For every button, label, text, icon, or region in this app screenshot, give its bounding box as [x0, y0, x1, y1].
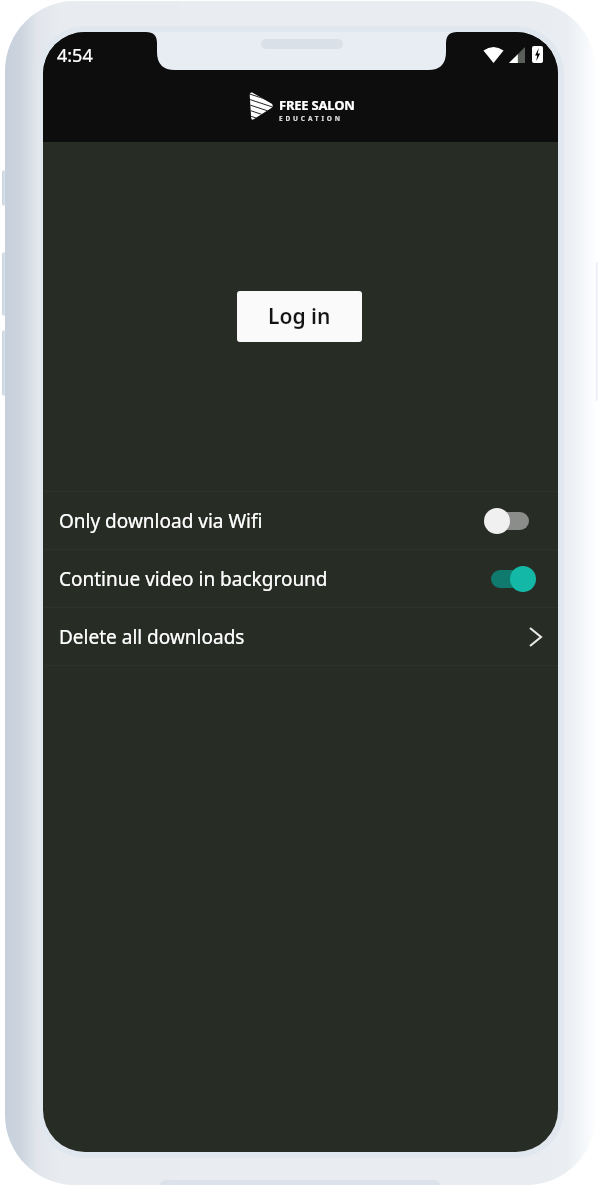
button[interactable]: Continue video in background	[43, 550, 558, 607]
button[interactable]: Free Salon Education	[249, 92, 273, 120]
button[interactable]: Log in	[237, 291, 362, 342]
button[interactable]: Delete all downloads	[43, 608, 558, 665]
staticText: Continue video in background	[59, 566, 328, 592]
button[interactable]: Off	[484, 508, 536, 534]
staticText: Delete all downloads	[59, 624, 245, 650]
staticText: EDUCATION	[279, 114, 343, 123]
button[interactable]: On	[484, 566, 536, 592]
staticText: Only download via Wifi	[59, 508, 263, 534]
staticText: Log in	[268, 302, 331, 331]
button[interactable]: Only download via Wifi	[43, 492, 558, 549]
other: Open	[518, 624, 536, 650]
staticText: 4:54	[57, 43, 93, 68]
staticText: FREE SALON	[279, 96, 355, 114]
